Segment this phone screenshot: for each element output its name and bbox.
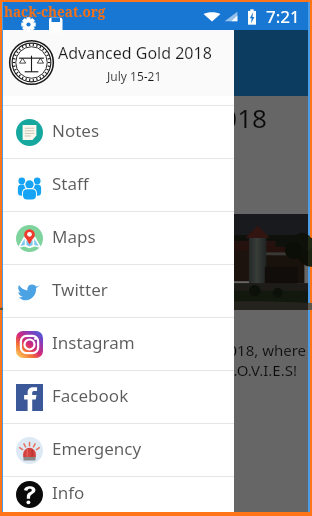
- button[interactable]: Notes: [3, 106, 234, 158]
- button[interactable]: Twitter: [3, 265, 234, 317]
- staticText: Welcome to Advanced Gold 2018, where: [23, 340, 307, 360]
- button[interactable]: Info: [3, 477, 234, 512]
- staticText: 7:21: [266, 5, 300, 28]
- button[interactable]: Advanced Gold 2018: [3, 30, 234, 96]
- staticText: Advanced Gold 2018: [17, 100, 267, 135]
- staticText: Notes: [52, 119, 100, 142]
- staticText: we MAKE MEMORIES and M.O.V.I.E.S!: [38, 360, 297, 380]
- staticText: Advanced Gold 2018: [58, 42, 212, 64]
- staticText: Staff: [52, 172, 89, 195]
- staticText: Maps: [52, 225, 96, 248]
- button[interactable]: Maps: [3, 212, 234, 264]
- staticText: Emergency: [52, 437, 142, 460]
- button[interactable]: Staff: [3, 159, 234, 211]
- button[interactable]: Instagram: [3, 318, 234, 370]
- staticText: Info: [52, 481, 85, 504]
- staticText: Facebook: [52, 384, 129, 407]
- staticText: hack-cheat.org: [4, 3, 106, 21]
- staticText: July 15-21: [107, 68, 162, 84]
- button[interactable]: Facebook: [3, 371, 234, 423]
- staticText: Instagram: [52, 331, 135, 354]
- button[interactable]: Emergency: [3, 424, 234, 476]
- staticText: Twitter: [52, 278, 108, 301]
